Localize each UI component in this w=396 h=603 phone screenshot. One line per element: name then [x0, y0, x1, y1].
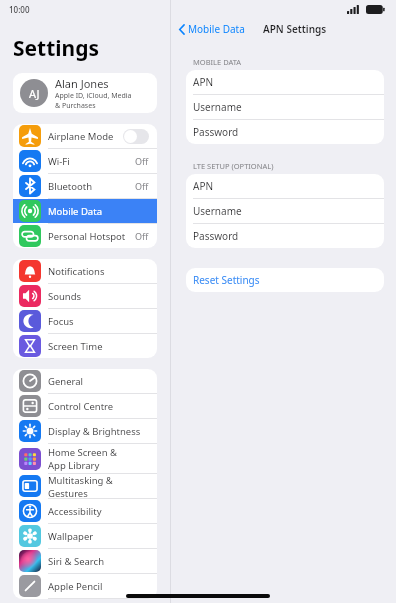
button[interactable]: Display & Brightness [13, 419, 157, 443]
button[interactable]: Airplane Mode [13, 124, 157, 148]
staticText: AJ [29, 86, 40, 101]
staticText: Apple ID, iCloud, Media [55, 91, 132, 101]
staticText: Bluetooth [48, 180, 135, 193]
staticText: Multitasking & Gestures [48, 474, 149, 498]
staticText: Sounds [48, 290, 149, 303]
button[interactable]: Accessibility [13, 499, 157, 523]
staticText: Password [193, 125, 239, 139]
staticText: MOBILE DATA [193, 57, 242, 67]
staticText: Alan Jones [55, 76, 109, 91]
button[interactable]: Apple Pencil [13, 574, 157, 598]
button[interactable]: Personal Hotspot [13, 224, 157, 248]
staticText: Password [193, 229, 239, 243]
staticText: Personal Hotspot [48, 230, 135, 243]
staticText: Mobile Data [48, 205, 149, 218]
staticText: Username [193, 100, 242, 114]
staticText: Reset Settings [193, 273, 260, 287]
button[interactable]: Notifications [13, 259, 157, 283]
staticText: Accessibility [48, 505, 149, 518]
button[interactable]: Password [186, 120, 384, 144]
staticText: Off [135, 180, 149, 192]
button[interactable]: APN [186, 174, 384, 198]
button[interactable]: Home Screen & [13, 444, 157, 473]
staticText: General [48, 375, 149, 388]
button[interactable]: AJ [13, 73, 157, 113]
staticText: Airplane Mode [48, 130, 123, 143]
button[interactable]: Control Centre [13, 394, 157, 418]
staticText: 10:00 [9, 4, 30, 15]
staticText: Display & Brightness [48, 425, 149, 438]
button[interactable]: Username [186, 95, 384, 119]
button[interactable]: APN [186, 70, 384, 94]
staticText: Screen Time [48, 340, 149, 353]
button[interactable]: Username [186, 199, 384, 223]
staticText: LTE SETUP (OPTIONAL) [193, 161, 274, 171]
staticText: Control Centre [48, 400, 149, 413]
button[interactable]: Sounds [13, 284, 157, 308]
button[interactable]: Mobile Data [13, 199, 157, 223]
staticText: APN [193, 75, 214, 89]
staticText: Notifications [48, 265, 149, 278]
button[interactable]: Password [186, 224, 384, 248]
button[interactable]: Siri & Search [13, 549, 157, 573]
staticText: Username [193, 204, 242, 218]
button[interactable]: Wi-Fi [13, 149, 157, 173]
button[interactable]: Mobile Data [171, 20, 251, 38]
button[interactable]: Reset Settings [186, 268, 384, 292]
staticText: App Library [48, 459, 100, 472]
staticText: Off [135, 230, 149, 242]
staticText: Wi-Fi [48, 155, 135, 168]
button[interactable]: Focus [13, 309, 157, 333]
button[interactable]: Wallpaper [13, 524, 157, 548]
button[interactable]: Bluetooth [13, 174, 157, 198]
staticText: Home Screen & [48, 446, 118, 459]
staticText: APN Settings [263, 22, 327, 36]
staticText: & Purchases [55, 101, 96, 111]
staticText: Apple Pencil [48, 580, 149, 593]
staticText: APN [193, 179, 214, 193]
staticText: Mobile Data [188, 22, 245, 36]
staticText: Off [135, 155, 149, 167]
staticText: Focus [48, 315, 149, 328]
staticText: Wallpaper [48, 530, 149, 543]
button[interactable]: Multitasking & Gestures [13, 474, 157, 498]
button[interactable]: General [13, 369, 157, 393]
button[interactable]: Airplane Mode [123, 129, 149, 144]
staticText: Settings [13, 34, 100, 63]
button[interactable]: Screen Time [13, 334, 157, 358]
staticText: Siri & Search [48, 555, 149, 568]
